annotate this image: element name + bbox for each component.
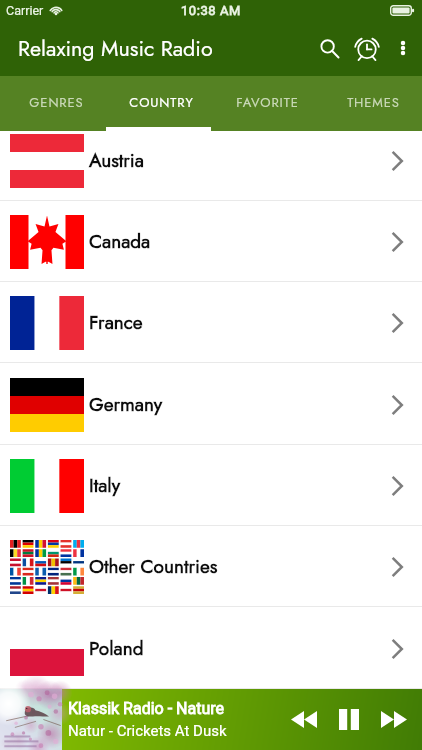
staticText: FAVORITE xyxy=(236,93,299,112)
button[interactable]: Alarm xyxy=(348,29,386,67)
staticText: Canada xyxy=(89,228,151,255)
button[interactable]: Germany xyxy=(0,364,422,445)
staticText: Italy xyxy=(89,472,121,499)
button[interactable]: Rewind xyxy=(281,689,327,750)
staticText: COUNTRY xyxy=(129,93,194,112)
button[interactable]: Austria xyxy=(0,131,422,201)
button[interactable]: Canada xyxy=(0,201,422,282)
staticText: Natur - Crickets At Dusk xyxy=(68,722,227,740)
button[interactable]: Fast forward xyxy=(371,689,417,750)
button[interactable]: THEMES xyxy=(320,75,422,130)
button[interactable]: Italy xyxy=(0,445,422,526)
staticText: Germany xyxy=(89,391,163,418)
staticText: Poland xyxy=(89,635,144,662)
button[interactable]: Search xyxy=(310,29,348,67)
staticText: France xyxy=(89,309,143,336)
button[interactable]: Other Countries xyxy=(0,526,422,607)
staticText: Austria xyxy=(89,147,144,174)
button[interactable]: FAVORITE xyxy=(214,75,320,130)
staticText: Relaxing Music Radio xyxy=(18,33,213,64)
staticText: 10:38 AM xyxy=(181,3,241,18)
staticText: Other Countries xyxy=(89,553,218,580)
button[interactable]: France xyxy=(0,282,422,363)
button[interactable]: More options xyxy=(386,31,420,65)
button[interactable]: COUNTRY xyxy=(109,75,214,130)
button[interactable]: GENRES xyxy=(4,75,109,130)
staticText: GENRES xyxy=(29,93,84,112)
button[interactable]: Poland xyxy=(0,608,422,689)
staticText: THEMES xyxy=(347,93,400,112)
button[interactable]: Pause xyxy=(327,689,371,750)
staticText: Carrier xyxy=(6,3,44,18)
staticText: Klassik Radio - Nature xyxy=(68,699,225,718)
